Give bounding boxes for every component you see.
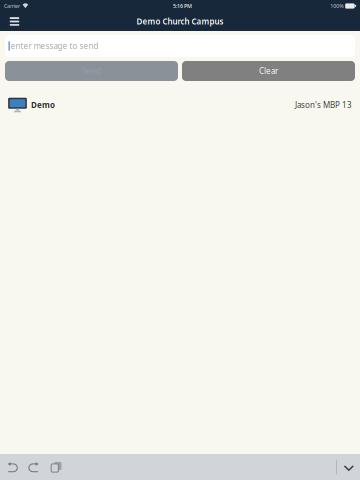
staticText: Demo <box>31 100 55 110</box>
button[interactable]: Redo <box>28 454 51 480</box>
staticText: Demo Church Campus <box>136 16 223 27</box>
staticText: 5:16 PM <box>173 2 192 10</box>
button[interactable]: Paste <box>51 454 73 480</box>
staticText: Carrier <box>4 2 20 10</box>
button[interactable]: enter message to send <box>5 35 355 57</box>
staticText: Send <box>82 66 101 76</box>
staticText: enter message to send <box>10 41 98 51</box>
staticText: 100% <box>330 2 343 10</box>
staticText: Clear <box>259 66 278 76</box>
button[interactable]: Demo <box>0 96 360 114</box>
button[interactable]: Menu <box>0 12 28 31</box>
button[interactable]: Clear <box>182 61 355 81</box>
button[interactable]: Send <box>5 61 178 81</box>
staticText: Jason's MBP 13 <box>295 100 352 110</box>
button[interactable]: Undo <box>0 454 28 480</box>
button[interactable]: Hide keyboard <box>337 454 360 480</box>
